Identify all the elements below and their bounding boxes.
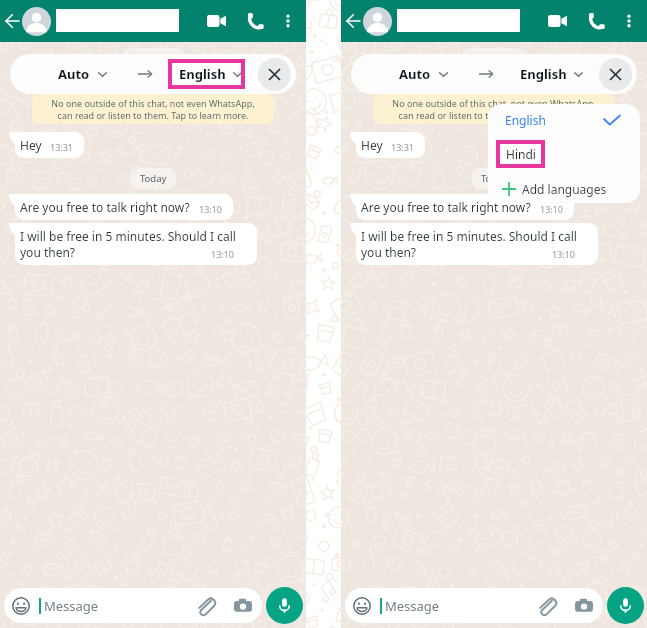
staticText: Today bbox=[140, 172, 167, 185]
staticText: 13:10 bbox=[199, 203, 223, 215]
staticText: Auto bbox=[399, 65, 431, 83]
button[interactable]: Voice call bbox=[582, 7, 610, 35]
button[interactable]: Video call bbox=[543, 7, 571, 35]
staticText: 13:10 bbox=[540, 203, 564, 215]
button[interactable]: Back bbox=[0, 9, 24, 33]
button[interactable]: Camera bbox=[573, 595, 595, 617]
button[interactable]: Attach bbox=[535, 595, 557, 617]
staticText: I will be free in 5 minutes. Should I ca… bbox=[361, 228, 577, 244]
button[interactable]: Hindi bbox=[496, 140, 545, 168]
button[interactable]: No one outside of this chat, not even Wh… bbox=[32, 94, 274, 124]
button[interactable]: More options bbox=[275, 8, 300, 33]
staticText: English bbox=[520, 65, 567, 83]
staticText: No one outside of this chat, not even Wh… bbox=[51, 97, 255, 122]
button[interactable]: Close translation bar bbox=[599, 58, 632, 91]
staticText: Are you free to talk right now? bbox=[361, 199, 531, 215]
button[interactable]: No one outside of this chat, not even Wh… bbox=[373, 94, 615, 124]
button[interactable]: Record voice message bbox=[266, 587, 303, 624]
staticText: English bbox=[179, 65, 226, 83]
staticText: Message bbox=[44, 597, 99, 615]
staticText: Hey bbox=[361, 137, 383, 153]
staticText: I will be free in 5 minutes. Should I ca… bbox=[20, 228, 236, 244]
staticText: No one outside of this chat, not even Wh… bbox=[392, 97, 596, 122]
staticText: 13:10 bbox=[211, 248, 235, 260]
button[interactable]: Camera bbox=[232, 595, 254, 617]
button[interactable]: Attach bbox=[194, 595, 216, 617]
button[interactable]: English bbox=[520, 59, 586, 89]
button[interactable]: Record voice message bbox=[607, 587, 644, 624]
staticText: Add languages bbox=[522, 181, 607, 197]
button[interactable]: Message bbox=[353, 588, 596, 623]
button[interactable]: Auto bbox=[399, 54, 448, 94]
button[interactable]: Video call bbox=[202, 7, 230, 35]
button[interactable]: Today bbox=[140, 172, 167, 185]
button[interactable]: Close translation bar bbox=[258, 58, 291, 91]
staticText: 13:10 bbox=[552, 248, 576, 260]
staticText: you then? bbox=[361, 244, 417, 260]
staticText: you then? bbox=[20, 244, 76, 260]
staticText: English bbox=[505, 112, 546, 128]
staticText: Message bbox=[385, 597, 440, 615]
staticText: Today bbox=[481, 172, 508, 185]
button[interactable]: English bbox=[179, 59, 245, 89]
staticText: Are you free to talk right now? bbox=[20, 199, 190, 215]
button[interactable]: English bbox=[505, 106, 620, 134]
staticText: Hindi bbox=[506, 146, 536, 162]
button[interactable]: Today bbox=[481, 172, 508, 185]
button[interactable]: Message bbox=[12, 588, 255, 623]
button[interactable]: Add languages bbox=[502, 176, 640, 202]
button[interactable]: Back bbox=[341, 9, 365, 33]
staticText: Hey bbox=[20, 137, 42, 153]
button[interactable]: More options bbox=[616, 8, 641, 33]
staticText: 13:31 bbox=[391, 141, 415, 153]
staticText: Auto bbox=[58, 65, 90, 83]
button[interactable]: Auto bbox=[58, 54, 107, 94]
button[interactable]: Voice call bbox=[241, 7, 269, 35]
staticText: 13:31 bbox=[50, 141, 74, 153]
